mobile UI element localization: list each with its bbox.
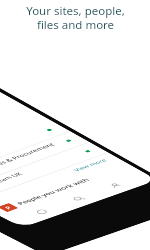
button[interactable]: Finance, Tax & Comms [0, 120, 71, 182]
staticText: View more [71, 157, 109, 172]
staticText: Your sites, people, files and more [26, 3, 125, 32]
button[interactable]: Contoso Team UK [0, 142, 109, 202]
button[interactable]: Corporate Services & Procurement [0, 131, 90, 192]
staticText: People you work with [14, 177, 91, 206]
button[interactable]: Me [103, 180, 128, 191]
button[interactable]: Home [30, 206, 54, 217]
staticText: Contoso Team UK [0, 171, 25, 194]
button[interactable]: Search [67, 193, 91, 204]
staticText: Finance, Tax & Comms [0, 145, 1, 174]
staticText: Corporate Services & Procurement [0, 142, 57, 184]
staticText: P [2, 205, 14, 210]
